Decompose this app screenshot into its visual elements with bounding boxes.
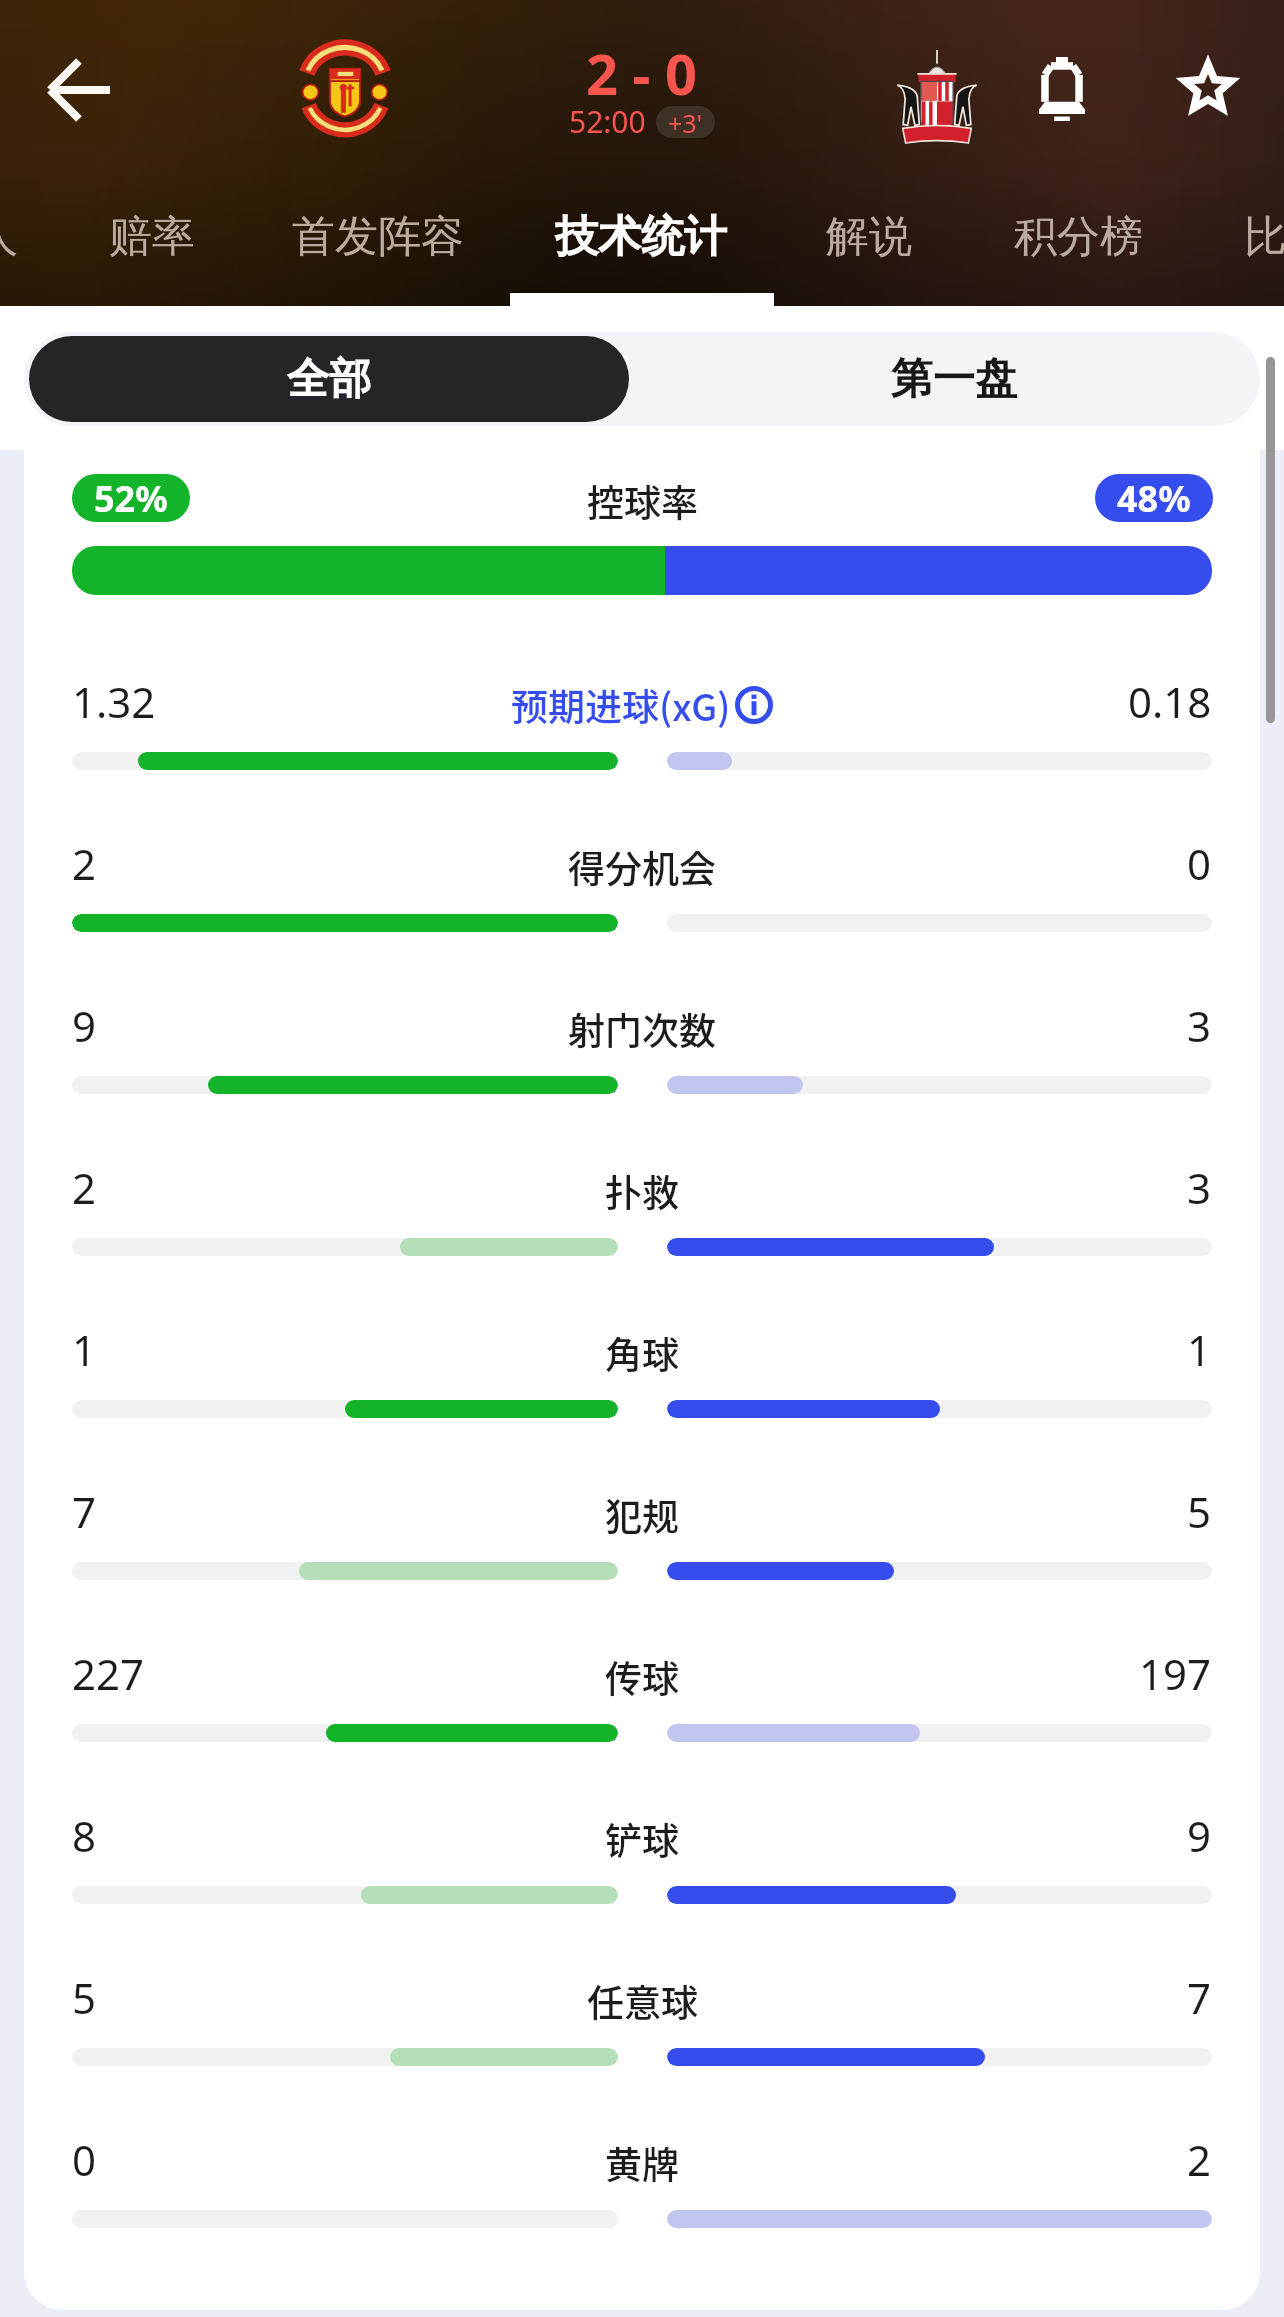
staticText: 3 [1187,997,1212,1054]
button[interactable]: 技术统计 [523,196,759,306]
staticText: 传球 [605,1650,679,1704]
button[interactable]: Notifications [1012,39,1112,139]
staticText: 铲球 [605,1812,679,1866]
staticText: 48% [1117,474,1191,522]
button[interactable]: 人 [0,196,48,306]
staticText: 8 [72,1807,97,1864]
button[interactable]: 首发阵容 [260,196,496,306]
staticText: 技术统计 [555,210,727,264]
staticText: 犯规 [605,1488,679,1542]
staticText: 人 [0,210,18,264]
staticText: 全部 [287,353,371,406]
staticText: 首发阵容 [292,210,464,264]
button[interactable]: Back [30,40,130,140]
staticText: 9 [72,997,97,1054]
button[interactable]: 赔率 [78,196,226,306]
staticText: 2 [1187,2131,1212,2188]
staticText: 控球率 [587,474,698,522]
staticText: 7 [1187,1969,1212,2026]
staticText: 射门次数 [568,1002,716,1056]
button[interactable]: 全部 [29,336,629,422]
staticText: 黄牌 [605,2136,679,2190]
staticText: 0 [72,2131,97,2188]
staticText: 得分机会 [568,840,716,894]
button[interactable]: 积分榜 [982,196,1174,306]
staticText: 积分榜 [1014,210,1143,264]
staticText: 比 [1244,210,1284,264]
staticText: 2 - 0 [586,35,698,111]
staticText: 2 [72,1159,97,1216]
staticText: 任意球 [587,1974,698,2028]
staticText: 5 [1187,1483,1212,1540]
staticText: 0.18 [1128,673,1212,730]
staticText: 扑救 [605,1164,679,1218]
staticText: +3' [668,106,703,138]
staticText: 第一盘 [891,353,1017,406]
staticText: 2 [72,835,97,892]
staticText: 52:00 [569,101,646,142]
staticText: 角球 [605,1326,679,1380]
staticText: 解说 [826,210,912,264]
staticText: 5 [72,1969,97,2026]
staticText: 197 [1139,1645,1212,1702]
staticText: 52% [94,474,168,522]
button[interactable]: 第一盘 [654,332,1254,426]
staticText: 227 [72,1645,145,1702]
staticText: 赔率 [109,210,195,264]
staticText: 预期进球(xG) [511,678,731,732]
staticText: 1 [1187,1321,1212,1378]
staticText: 3 [1187,1159,1212,1216]
staticText: 7 [72,1483,97,1540]
button[interactable]: 比 [1213,196,1284,306]
staticText: 1.32 [72,673,156,730]
staticText: 1 [72,1321,97,1378]
staticText: 9 [1187,1807,1212,1864]
staticText: 0 [1187,835,1212,892]
button[interactable]: 解说 [795,196,943,306]
button[interactable]: Favorite [1158,36,1258,136]
